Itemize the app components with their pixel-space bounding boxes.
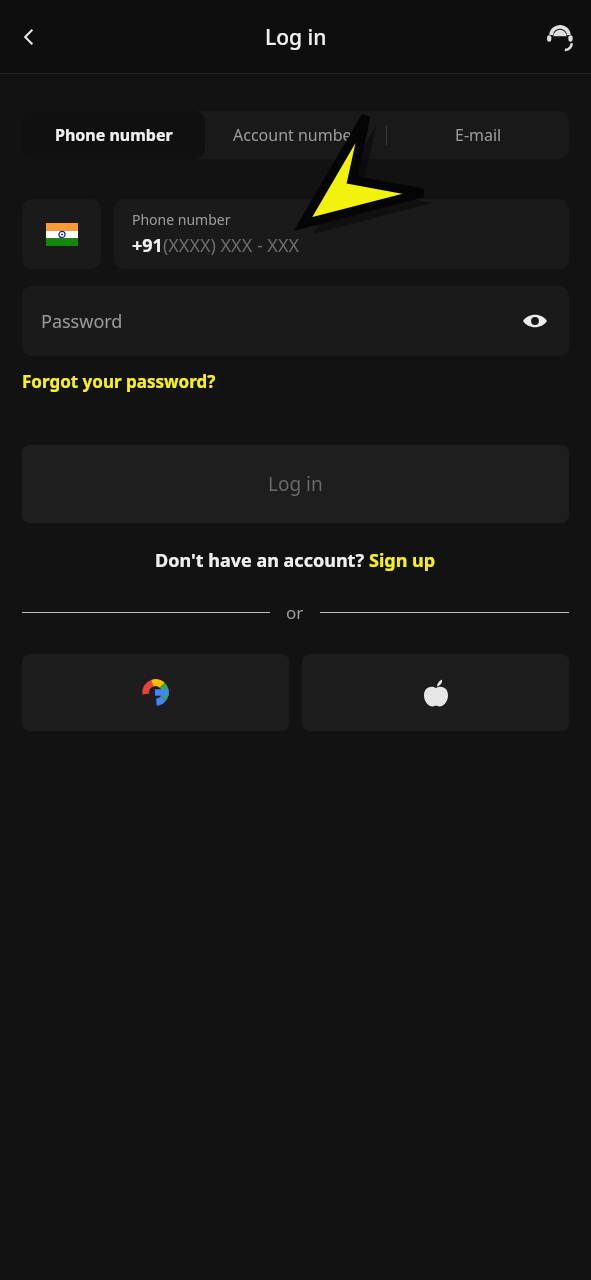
staticText: Sign up bbox=[369, 548, 436, 573]
staticText: Account number bbox=[233, 124, 359, 146]
staticText: or bbox=[286, 601, 304, 624]
button[interactable]: Phone number bbox=[22, 111, 205, 159]
button[interactable] bbox=[22, 199, 101, 269]
button[interactable]: Support bbox=[537, 14, 583, 60]
button[interactable]: Sign in with Apple bbox=[302, 654, 569, 731]
button[interactable]: Log in bbox=[22, 445, 569, 523]
button[interactable]: Account number bbox=[205, 111, 387, 159]
staticText: Log in bbox=[265, 23, 327, 52]
staticText: +91(XXXX) XXX - XXX bbox=[132, 233, 300, 258]
button[interactable]: E-mail bbox=[387, 111, 569, 159]
staticText: Don't have an account? bbox=[155, 548, 369, 573]
button[interactable]: Sign in with Google bbox=[22, 654, 289, 731]
staticText: Phone number bbox=[132, 210, 231, 229]
button[interactable]: Show password bbox=[515, 301, 555, 341]
staticText: E-mail bbox=[455, 124, 502, 146]
button[interactable]: Don't have an account? bbox=[155, 548, 436, 573]
button[interactable]: Phone number bbox=[114, 199, 569, 269]
staticText: Log in bbox=[268, 471, 323, 497]
staticText: Phone number bbox=[55, 124, 173, 146]
staticText: Password bbox=[41, 309, 123, 334]
button[interactable]: Password bbox=[22, 286, 569, 356]
button[interactable]: Forgot your password? bbox=[22, 370, 216, 393]
button[interactable]: Back bbox=[6, 14, 52, 60]
